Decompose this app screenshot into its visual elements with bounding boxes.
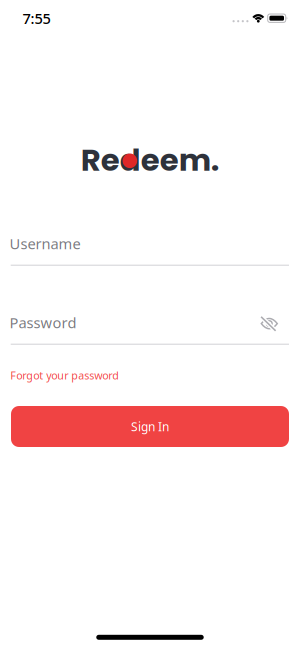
button[interactable]: Forgot your password [10,368,119,382]
button[interactable]: Username [10,234,290,266]
button[interactable]: Password [10,313,290,345]
staticText: Username [10,234,81,253]
staticText: Password [10,313,77,332]
staticText: 7:55 [22,8,50,28]
button[interactable]: Sign In [11,406,289,447]
button[interactable] [258,313,280,334]
staticText: Redeem. [81,138,220,181]
staticText: Sign In [131,418,169,434]
staticText: Forgot your password [10,368,119,382]
